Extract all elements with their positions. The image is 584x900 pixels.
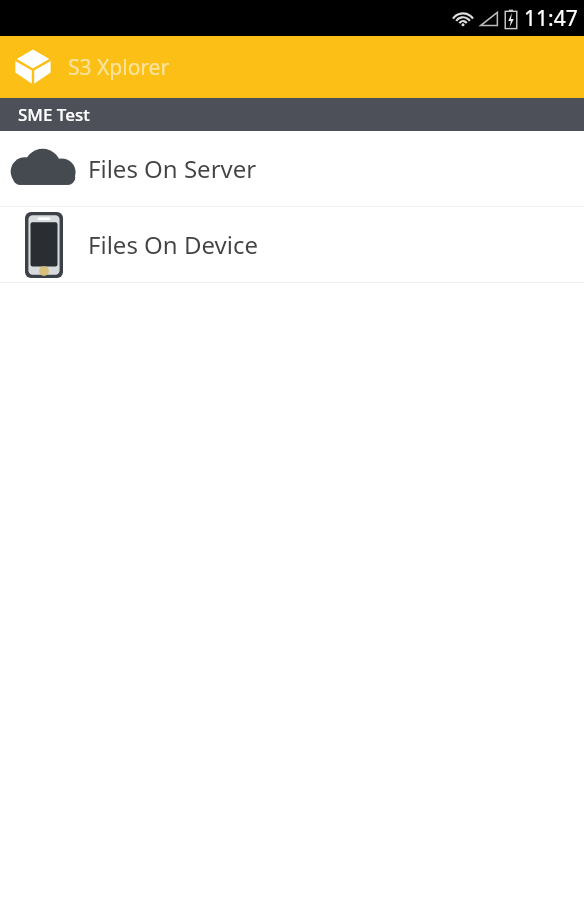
button[interactable]: App logo — [0, 36, 584, 98]
staticText: S3 Xplorer — [68, 53, 170, 82]
other: App logo — [11, 44, 55, 90]
other: Device — [25, 212, 63, 278]
button[interactable]: SME Test — [0, 98, 584, 131]
staticText: 11:47 — [524, 4, 578, 33]
other: Cloud — [10, 148, 78, 190]
staticText: Files On Server — [88, 152, 257, 185]
staticText: SME Test — [18, 103, 90, 126]
staticText: Files On Device — [88, 228, 258, 261]
button[interactable]: Device — [0, 207, 584, 282]
button[interactable]: Cloud — [0, 131, 584, 206]
